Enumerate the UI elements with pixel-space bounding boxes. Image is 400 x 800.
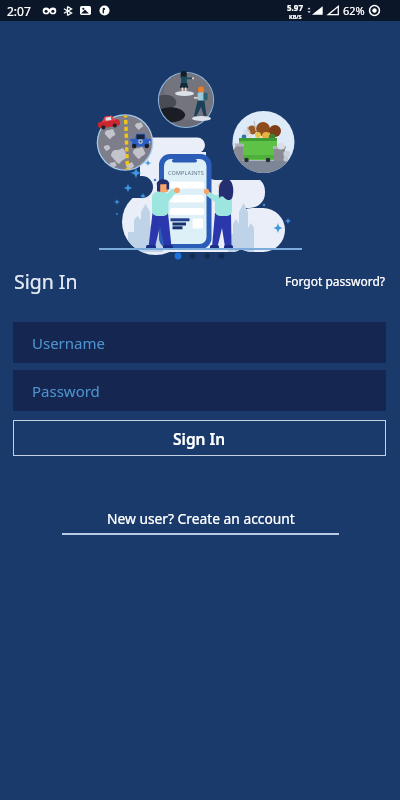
staticText: 2:07 xyxy=(7,3,31,19)
staticText: Sign In xyxy=(173,428,226,449)
staticText: COMPLAINTS xyxy=(168,169,204,176)
button[interactable]: Forgot password? xyxy=(281,269,390,293)
staticText: Username xyxy=(32,333,105,353)
staticText: 62% xyxy=(343,3,365,18)
staticText: KB/S xyxy=(289,13,302,20)
button[interactable]: Sign In xyxy=(13,420,386,456)
button[interactable]: Password xyxy=(13,370,386,411)
staticText: Forgot password? xyxy=(285,273,386,289)
staticText: New user? Create an account xyxy=(107,509,295,528)
button[interactable]: Username xyxy=(13,322,386,363)
staticText: Sign In xyxy=(14,268,78,295)
button[interactable]: New user? Create an account xyxy=(62,509,339,535)
staticText: Password xyxy=(32,381,100,401)
staticText: 5.97 xyxy=(287,2,303,13)
